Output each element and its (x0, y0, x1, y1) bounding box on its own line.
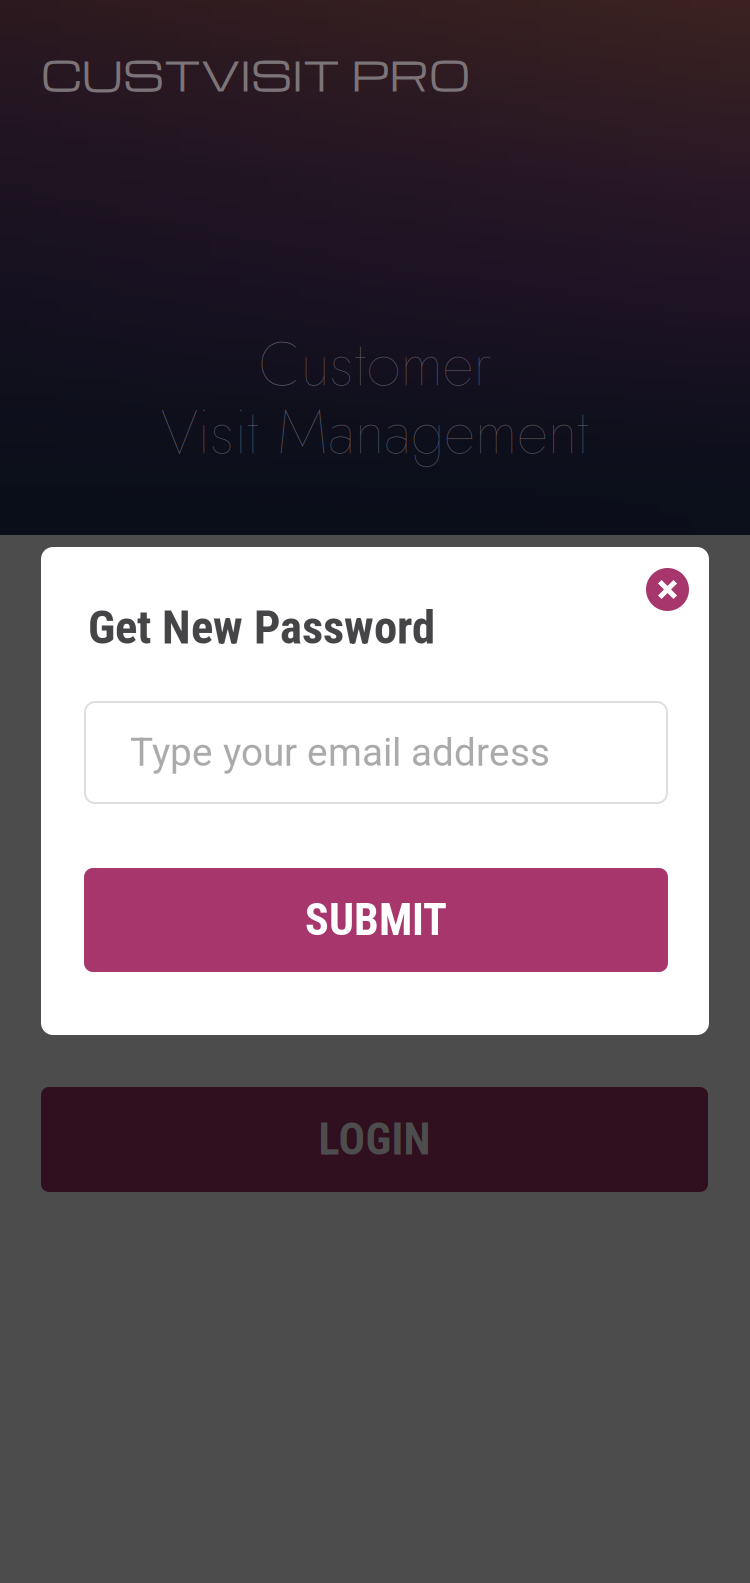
button[interactable]: Close (646, 568, 689, 611)
staticText: Customer (258, 320, 491, 408)
staticText: Visit Management (161, 388, 589, 476)
staticText: SUBMIT (305, 894, 447, 946)
button[interactable]: LOGIN (41, 1087, 708, 1192)
staticText: LOGIN (318, 1114, 430, 1165)
button[interactable]: SUBMIT (84, 868, 668, 972)
staticText: Get New Password (88, 600, 435, 655)
staticText: CUSTVISIT PRO (41, 46, 470, 102)
staticText: Type your email address (130, 730, 550, 775)
